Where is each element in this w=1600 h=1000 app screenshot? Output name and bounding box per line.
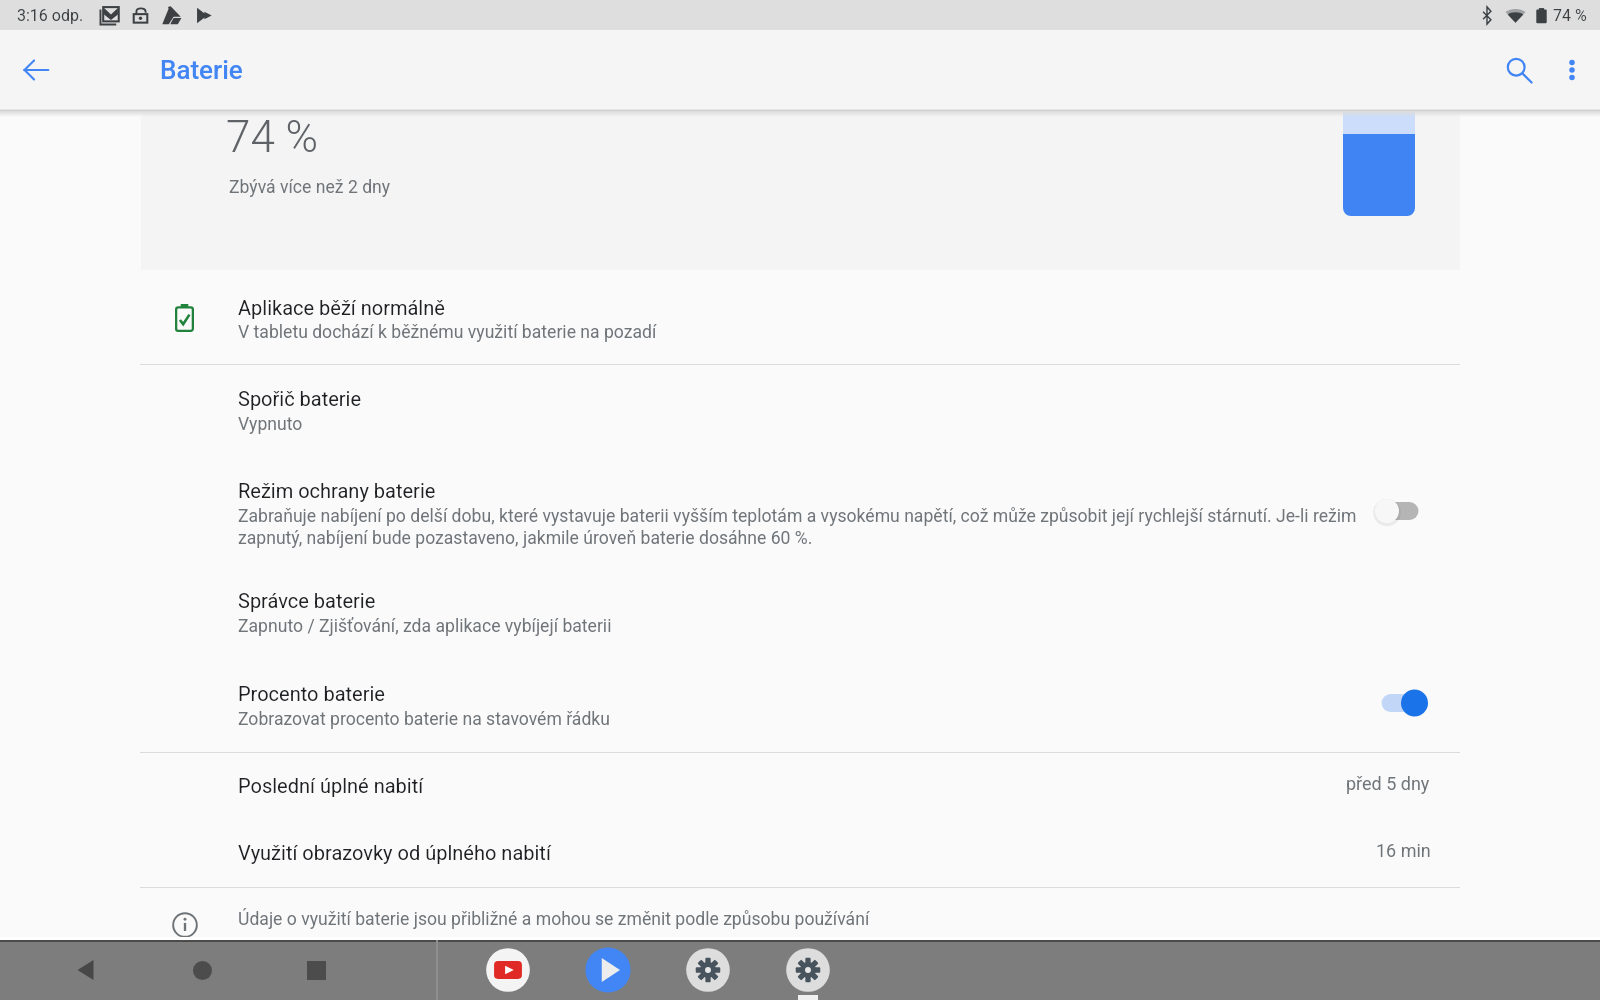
- button[interactable]: Settings: [680, 942, 736, 998]
- button[interactable]: Back: [55, 940, 115, 1000]
- staticText: 16 min: [1376, 840, 1431, 861]
- button[interactable]: Home: [172, 940, 232, 1000]
- staticText: Vypnuto: [238, 414, 303, 435]
- staticText: Baterie: [160, 55, 243, 85]
- button[interactable]: Settings: [780, 942, 836, 998]
- staticText: Spořič baterie: [238, 387, 362, 410]
- staticText: Zabraňuje nabíjení po delší dobu, které …: [238, 506, 1360, 548]
- button[interactable]: YouTube: [480, 942, 536, 998]
- staticText: 74 %: [1553, 6, 1587, 25]
- button[interactable]: On: [1371, 684, 1427, 722]
- staticText: Poslední úplné nabití: [238, 774, 424, 797]
- staticText: 74 %: [226, 111, 319, 163]
- button[interactable]: Procento baterie: [0, 665, 1600, 749]
- button[interactable]: Správce baterie: [0, 572, 1600, 656]
- button[interactable]: Recents: [286, 940, 346, 1000]
- staticText: Zapnuto / Zjišťování, zda aplikace vybíj…: [238, 616, 612, 637]
- button[interactable]: Režim ochrany baterie: [0, 458, 1600, 564]
- staticText: před 5 dny: [1346, 773, 1430, 794]
- button[interactable]: Play: [580, 942, 636, 998]
- staticText: 3:16 odp.: [17, 6, 84, 25]
- staticText: Využití obrazovky od úplného nabití: [238, 841, 551, 864]
- button[interactable]: Off: [1373, 492, 1429, 530]
- button[interactable]: More options: [1548, 46, 1596, 94]
- staticText: Údaje o využití baterie jsou přibližné a…: [238, 909, 870, 930]
- staticText: Zobrazovat procento baterie na stavovém …: [238, 709, 610, 730]
- button[interactable]: Aplikace běží normálně: [0, 276, 1600, 362]
- staticText: Aplikace běží normálně: [238, 296, 445, 319]
- button[interactable]: Search: [1495, 46, 1543, 94]
- button[interactable]: Poslední úplné nabití: [0, 754, 1600, 818]
- staticText: V tabletu dochází k běžnému využití bate…: [238, 322, 657, 343]
- button[interactable]: Využití obrazovky od úplného nabití: [0, 818, 1600, 884]
- staticText: Správce baterie: [238, 589, 376, 612]
- staticText: Zbývá více než 2 dny: [229, 177, 391, 198]
- button[interactable]: Back: [12, 46, 60, 94]
- staticText: Režim ochrany baterie: [238, 479, 436, 502]
- button[interactable]: Spořič baterie: [0, 368, 1600, 452]
- staticText: Procento baterie: [238, 682, 385, 705]
